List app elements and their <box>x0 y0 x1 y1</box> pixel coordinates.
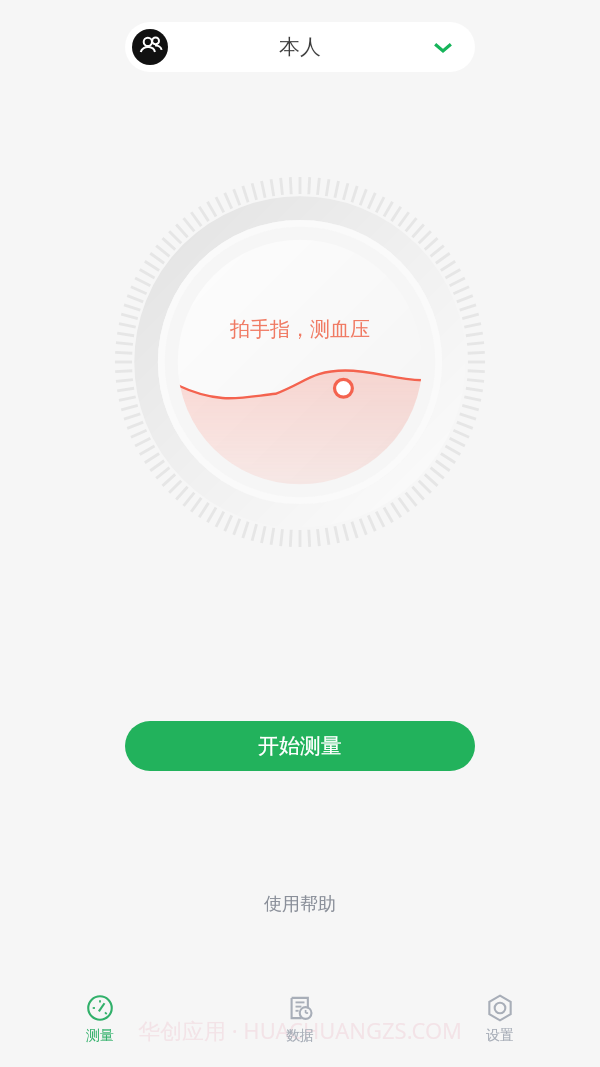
staticText: 开始测量 <box>258 733 342 759</box>
button[interactable]: 设置 <box>400 980 600 1067</box>
button[interactable]: 开始测量 <box>125 721 475 771</box>
staticText: 华创应用 · HUACHUANGZS.COM <box>138 1015 463 1045</box>
button[interactable]: 测量 <box>0 980 200 1067</box>
button[interactable]: Select profile <box>429 33 457 61</box>
staticText: 本人 <box>279 34 321 60</box>
button[interactable]: Blood pressure gauge <box>110 172 490 552</box>
staticText: 设置 <box>486 1027 514 1045</box>
button[interactable]: 本人 <box>125 22 475 72</box>
staticText: 拍手指，测血压 <box>230 317 370 342</box>
staticText: 测量 <box>86 1027 114 1045</box>
staticText: 使用帮助 <box>264 893 336 916</box>
button[interactable]: 使用帮助 <box>0 884 600 924</box>
staticText: 数据 <box>286 1027 314 1045</box>
button[interactable]: 数据 <box>200 980 400 1067</box>
